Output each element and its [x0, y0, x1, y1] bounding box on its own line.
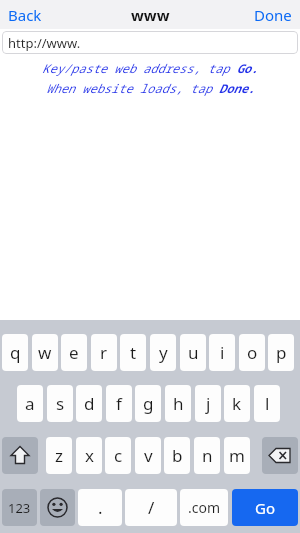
button[interactable]: u: [180, 334, 206, 371]
button[interactable]: 123: [2, 489, 37, 526]
button[interactable]: Done: [254, 0, 292, 29]
button[interactable]: w: [32, 334, 58, 371]
button[interactable]: /: [125, 489, 177, 526]
staticText: h: [173, 392, 184, 415]
button[interactable]: f: [106, 385, 132, 422]
staticText: i: [220, 341, 225, 364]
staticText: w: [38, 341, 52, 364]
button[interactable]: n: [194, 437, 220, 474]
staticText: c: [114, 444, 123, 467]
button[interactable]: Go: [232, 489, 298, 526]
button[interactable]: k: [224, 385, 250, 422]
button[interactable]: a: [17, 385, 43, 422]
staticText: m: [229, 444, 245, 467]
button[interactable]: c: [105, 437, 131, 474]
staticText: t: [130, 341, 137, 364]
staticText: s: [56, 392, 65, 415]
staticText: x: [85, 444, 94, 467]
staticText: n: [202, 444, 213, 467]
button[interactable]: o: [239, 334, 265, 371]
staticText: 123: [8, 499, 31, 517]
button[interactable]: b: [164, 437, 190, 474]
staticText: Back: [8, 5, 42, 25]
staticText: b: [172, 444, 183, 467]
staticText: o: [247, 341, 258, 364]
button[interactable]: z: [46, 437, 72, 474]
button[interactable]: y: [150, 334, 176, 371]
button[interactable]: q: [2, 334, 28, 371]
staticText: g: [143, 392, 154, 415]
button[interactable]: e: [61, 334, 87, 371]
button[interactable]: Emoji: [40, 489, 75, 526]
staticText: r: [100, 341, 108, 364]
staticText: .: [98, 496, 103, 519]
button[interactable]: http://www.: [2, 31, 298, 54]
staticText: Done: [254, 5, 292, 25]
staticText: k: [232, 392, 242, 415]
button[interactable]: h: [165, 385, 191, 422]
staticText: f: [116, 392, 122, 415]
button[interactable]: Back: [8, 0, 42, 29]
staticText: j: [206, 392, 211, 415]
staticText: p: [276, 341, 287, 364]
staticText: http://www.: [8, 34, 81, 52]
staticText: z: [55, 444, 63, 467]
button[interactable]: l: [254, 385, 280, 422]
button[interactable]: v: [135, 437, 161, 474]
staticText: u: [188, 341, 199, 364]
button[interactable]: t: [120, 334, 146, 371]
button[interactable]: d: [76, 385, 102, 422]
button[interactable]: .com: [180, 489, 228, 526]
button[interactable]: x: [76, 437, 102, 474]
staticText: .com: [188, 498, 221, 517]
button[interactable]: p: [268, 334, 294, 371]
staticText: www: [131, 5, 170, 25]
staticText: l: [265, 392, 270, 415]
staticText: d: [84, 392, 95, 415]
staticText: y: [159, 341, 168, 364]
staticText: e: [69, 341, 79, 364]
staticText: v: [144, 444, 153, 467]
button[interactable]: Delete: [262, 437, 298, 474]
button[interactable]: .: [78, 489, 122, 526]
staticText: When website loads, tap Done.: [46, 80, 255, 96]
staticText: a: [25, 392, 35, 415]
button[interactable]: g: [135, 385, 161, 422]
button[interactable]: Shift: [2, 437, 38, 474]
button[interactable]: m: [224, 437, 250, 474]
button[interactable]: i: [209, 334, 235, 371]
staticText: Key/paste web address, tap Go.: [42, 60, 259, 76]
staticText: Go: [255, 498, 275, 518]
staticText: q: [10, 341, 21, 364]
button[interactable]: j: [195, 385, 221, 422]
button[interactable]: r: [91, 334, 117, 371]
staticText: /: [148, 496, 155, 519]
button[interactable]: s: [47, 385, 73, 422]
